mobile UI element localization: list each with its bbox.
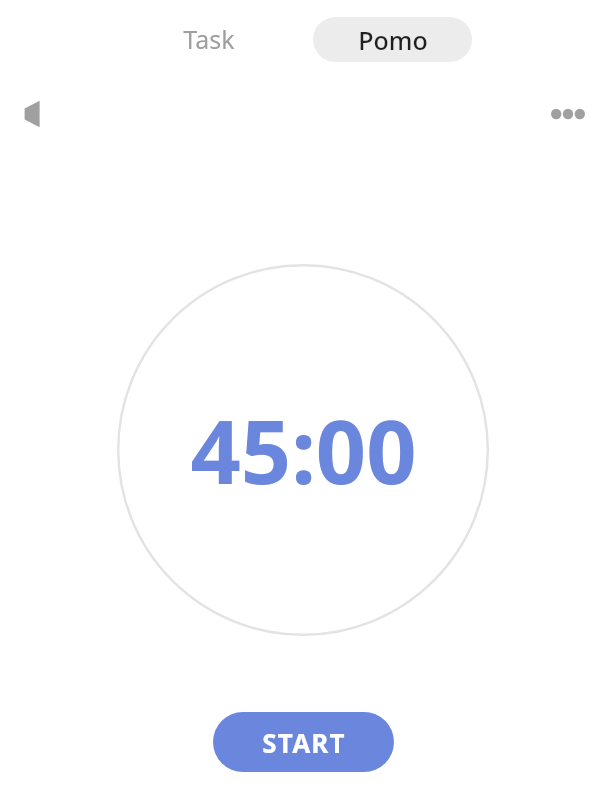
staticText: Task xyxy=(183,22,235,56)
button[interactable]: Task xyxy=(150,14,268,64)
button[interactable]: Sound xyxy=(8,86,64,142)
button[interactable]: START xyxy=(213,712,394,772)
staticText: START xyxy=(262,725,346,760)
staticText: Pomo xyxy=(358,23,428,57)
staticText: 45:00 xyxy=(190,390,417,510)
button[interactable]: More options xyxy=(540,86,596,142)
button[interactable]: Pomo xyxy=(313,17,472,62)
